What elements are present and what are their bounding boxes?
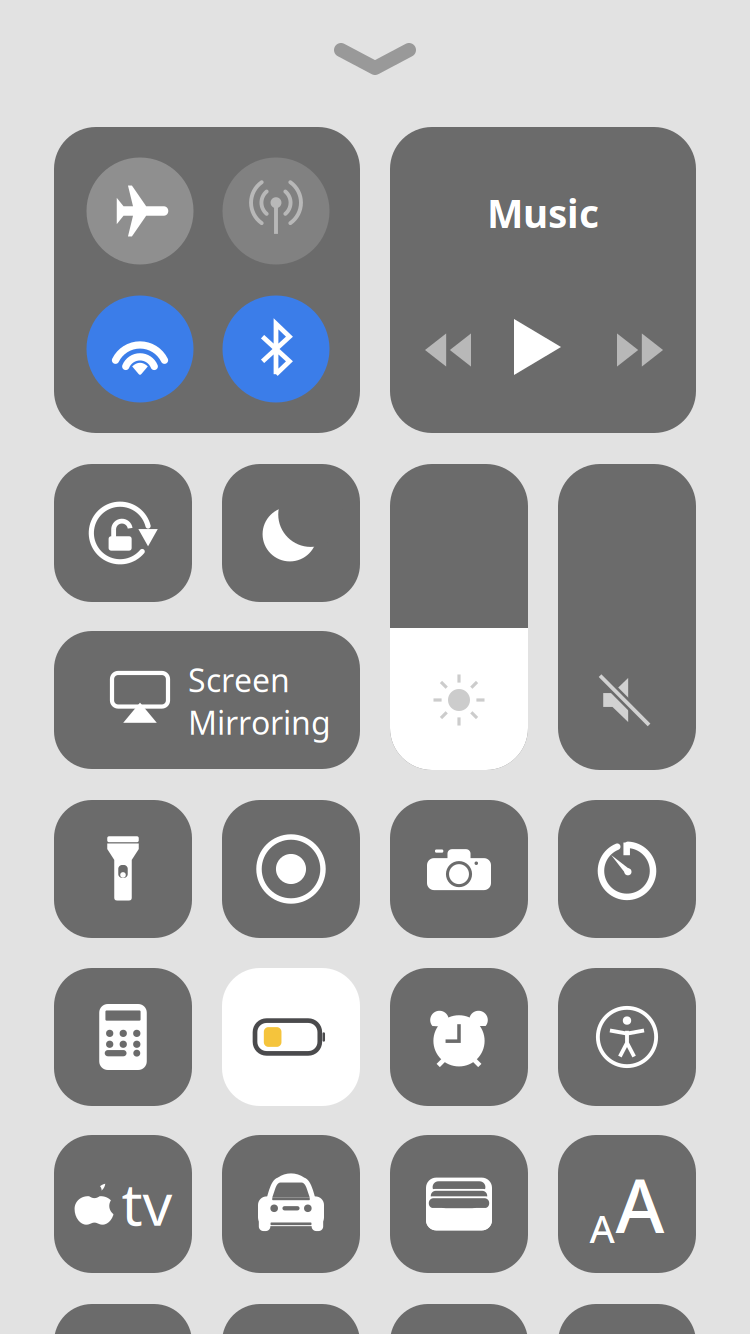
staticText: Screen Mirroring	[188, 658, 331, 743]
button[interactable]: Play	[505, 315, 575, 385]
button[interactable]: Alarm	[390, 968, 528, 1106]
button[interactable]: Screen Mirroring	[54, 631, 360, 769]
button[interactable]: Screen Recording	[222, 800, 360, 938]
button[interactable]: Volume	[558, 464, 696, 770]
button[interactable]: Apple TV Remote	[54, 1135, 192, 1273]
button[interactable]: More	[222, 1304, 360, 1334]
button[interactable]: Camera	[390, 800, 528, 938]
button[interactable]: Low Power Mode	[222, 968, 360, 1106]
button[interactable]: Rotation Lock	[54, 464, 192, 602]
button[interactable]: Cellular Data	[222, 157, 329, 264]
button[interactable]: Rewind	[413, 315, 483, 385]
button[interactable]: More	[54, 1304, 192, 1334]
button[interactable]: Bluetooth	[222, 295, 329, 402]
button[interactable]: Close Control Center	[330, 38, 420, 84]
button[interactable]: Accessibility	[558, 968, 696, 1106]
staticText: tv	[121, 1164, 172, 1242]
button[interactable]: Calculator	[54, 968, 192, 1106]
button[interactable]: Brightness	[390, 464, 528, 770]
button[interactable]: Flashlight	[54, 800, 192, 938]
button[interactable]: Airplane Mode	[86, 157, 193, 264]
button[interactable]: Do Not Disturb	[222, 464, 360, 602]
button[interactable]: Timer	[558, 800, 696, 938]
staticText: A	[589, 1202, 614, 1253]
button[interactable]: Fast Forward	[605, 315, 675, 385]
button[interactable]: More	[558, 1304, 696, 1334]
staticText: A	[616, 1154, 665, 1254]
button[interactable]: More	[390, 1304, 528, 1334]
button[interactable]: CarPlay	[222, 1135, 360, 1273]
button[interactable]: Wallet	[390, 1135, 528, 1273]
staticText: Music	[487, 187, 599, 239]
button[interactable]: Text Size	[558, 1135, 696, 1273]
button[interactable]: Wi-Fi	[86, 295, 193, 402]
